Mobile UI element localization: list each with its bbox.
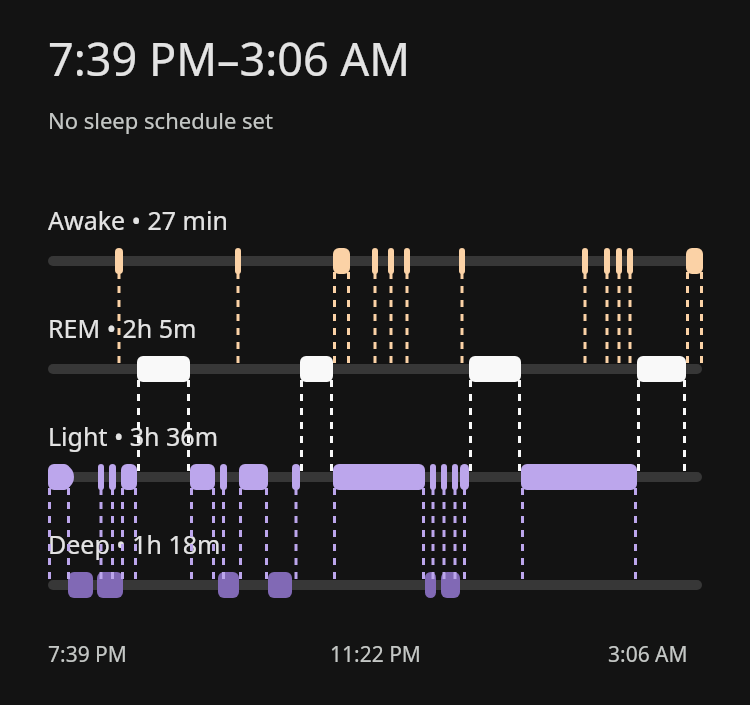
staticText: 3:06 AM bbox=[608, 640, 688, 669]
staticText: 7:39 PM bbox=[48, 640, 127, 669]
staticText: 11:22 PM bbox=[330, 640, 421, 669]
staticText: Deep • 1h 18m bbox=[48, 527, 221, 561]
staticText: 7:39 PM–3:06 AM bbox=[48, 28, 411, 89]
staticText: Light • 3h 36m bbox=[48, 419, 219, 453]
staticText: No sleep schedule set bbox=[48, 105, 273, 135]
staticText: REM • 2h 5m bbox=[48, 311, 197, 345]
staticText: Awake • 27 min bbox=[48, 203, 228, 237]
button[interactable]: Sleep stages hypnogram bbox=[0, 0, 750, 705]
